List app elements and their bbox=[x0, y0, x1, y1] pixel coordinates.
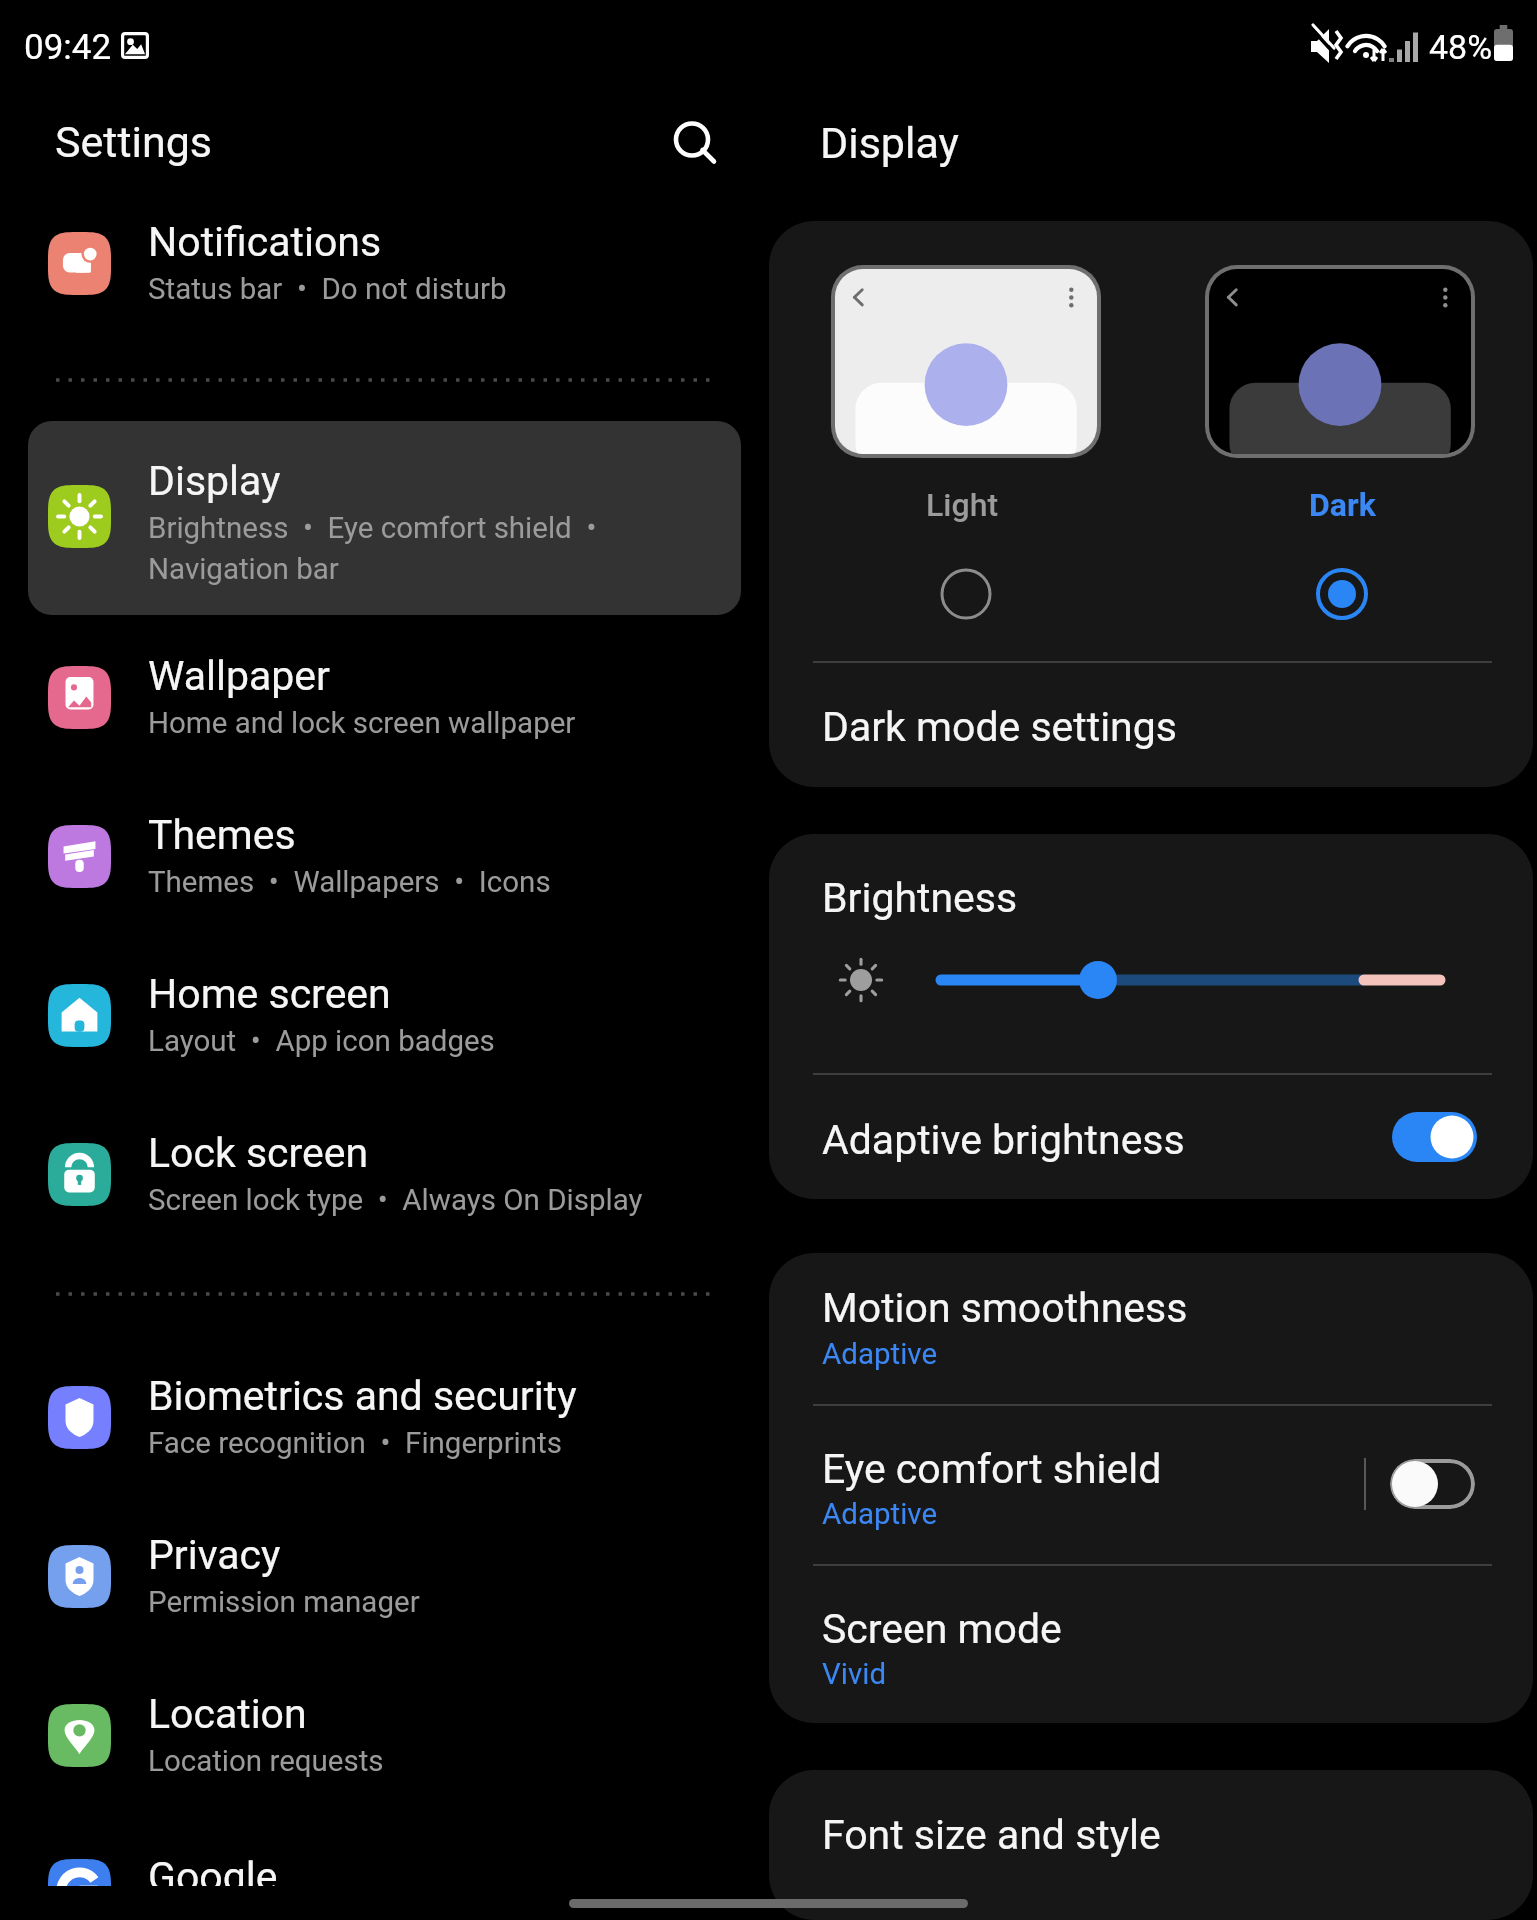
staticText: Brightness • Eye comfort shield • bbox=[148, 511, 597, 546]
staticText: Permission manager bbox=[148, 1585, 420, 1620]
staticText: Navigation bar bbox=[148, 552, 339, 587]
staticText: Light bbox=[926, 486, 999, 524]
button[interactable]: Biometrics and security bbox=[0, 1338, 769, 1497]
button[interactable]: Adaptive brightness bbox=[769, 1096, 1533, 1199]
button[interactable]: Dark mode bbox=[1315, 567, 1369, 621]
staticText: Eye comfort shield bbox=[822, 1445, 1162, 1493]
button[interactable]: Privacy bbox=[0, 1497, 769, 1656]
button[interactable] bbox=[1205, 265, 1475, 458]
staticText: Screen lock type • Always On Display bbox=[148, 1183, 643, 1218]
button[interactable]: Home screen bbox=[0, 936, 769, 1095]
button[interactable]: Notifications bbox=[0, 200, 769, 326]
staticText: Motion smoothness bbox=[822, 1284, 1188, 1332]
button[interactable]: Location bbox=[0, 1656, 769, 1815]
button[interactable]: Screen mode bbox=[769, 1573, 1533, 1723]
staticText: Lock screen bbox=[148, 1129, 369, 1177]
staticText: Font size and style bbox=[822, 1811, 1161, 1859]
staticText: Display bbox=[148, 457, 281, 505]
staticText: Adaptive brightness bbox=[822, 1116, 1185, 1164]
staticText: Notifications bbox=[148, 218, 382, 266]
staticText: Screen mode bbox=[822, 1605, 1062, 1653]
button[interactable]: Motion smoothness bbox=[769, 1253, 1533, 1404]
staticText: Themes bbox=[148, 811, 296, 859]
staticText: Display bbox=[820, 118, 959, 168]
staticText: Brightness bbox=[822, 874, 1018, 922]
staticText: Google bbox=[148, 1853, 278, 1886]
button[interactable]: Google bbox=[0, 1815, 769, 1886]
staticText: Themes • Wallpapers • Icons bbox=[148, 865, 551, 900]
staticText: Layout • App icon badges bbox=[148, 1024, 495, 1059]
staticText: Home screen bbox=[148, 970, 391, 1018]
staticText: Dark bbox=[1309, 486, 1376, 524]
button[interactable]: Lock screen bbox=[0, 1095, 769, 1254]
staticText: Adaptive bbox=[822, 1337, 938, 1372]
staticText: Adaptive bbox=[822, 1497, 938, 1532]
staticText: Face recognition • Fingerprints bbox=[148, 1426, 562, 1461]
button[interactable]: Brightness slider bbox=[927, 958, 1451, 1002]
button[interactable]: Display bbox=[28, 421, 741, 615]
button[interactable]: Search bbox=[652, 102, 732, 182]
staticText: Privacy bbox=[148, 1531, 281, 1579]
button[interactable]: Dark mode settings bbox=[769, 687, 1533, 787]
button[interactable]: Toggle off bbox=[1390, 1459, 1475, 1509]
staticText: Settings bbox=[55, 117, 213, 167]
button[interactable]: Toggle on bbox=[1392, 1112, 1477, 1162]
button[interactable]: Wallpaper bbox=[0, 618, 769, 777]
staticText: 48% bbox=[1429, 27, 1493, 67]
button[interactable]: Font size and style bbox=[769, 1770, 1533, 1920]
staticText: Location bbox=[148, 1690, 307, 1738]
button[interactable] bbox=[831, 265, 1101, 458]
staticText: Vivid bbox=[822, 1657, 887, 1692]
staticText: Biometrics and security bbox=[148, 1372, 577, 1420]
staticText: Location requests bbox=[148, 1744, 384, 1779]
staticText: 09:42 bbox=[24, 27, 112, 68]
staticText: Status bar • Do not disturb bbox=[148, 272, 507, 307]
button[interactable]: Themes bbox=[0, 777, 769, 936]
button[interactable]: Light mode bbox=[939, 567, 993, 621]
staticText: Dark mode settings bbox=[822, 703, 1177, 751]
button[interactable]: Eye comfort shield bbox=[769, 1413, 1533, 1573]
staticText: Home and lock screen wallpaper bbox=[148, 706, 576, 741]
staticText: Wallpaper bbox=[148, 652, 330, 700]
